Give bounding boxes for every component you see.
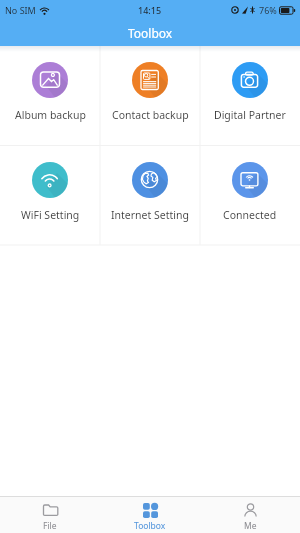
button[interactable]: Contact backup [100,46,200,146]
button[interactable]: Me [200,496,300,533]
button[interactable]: Internet Setting [100,146,200,246]
staticText: Internet Setting [111,208,189,222]
button[interactable]: Album backup [0,46,100,146]
staticText: Album backup [15,108,86,122]
button[interactable]: Connected [200,146,300,246]
staticText: Digital Partner [214,108,286,122]
staticText: Contact backup [112,108,189,122]
staticText: File [43,520,57,532]
button[interactable]: File [0,496,100,533]
button[interactable]: Toolbox [100,496,200,533]
staticText: No SIM [5,4,36,16]
staticText: Toolbox [134,520,166,532]
staticText: Me [244,520,257,532]
button[interactable]: Digital Partner [200,46,300,146]
button[interactable]: WiFi Setting [0,146,100,246]
staticText: 14:15 [138,4,162,16]
staticText: Toolbox [128,25,173,41]
staticText: WiFi Setting [21,208,80,222]
staticText: 76% [259,4,277,16]
staticText: Connected [223,208,277,222]
